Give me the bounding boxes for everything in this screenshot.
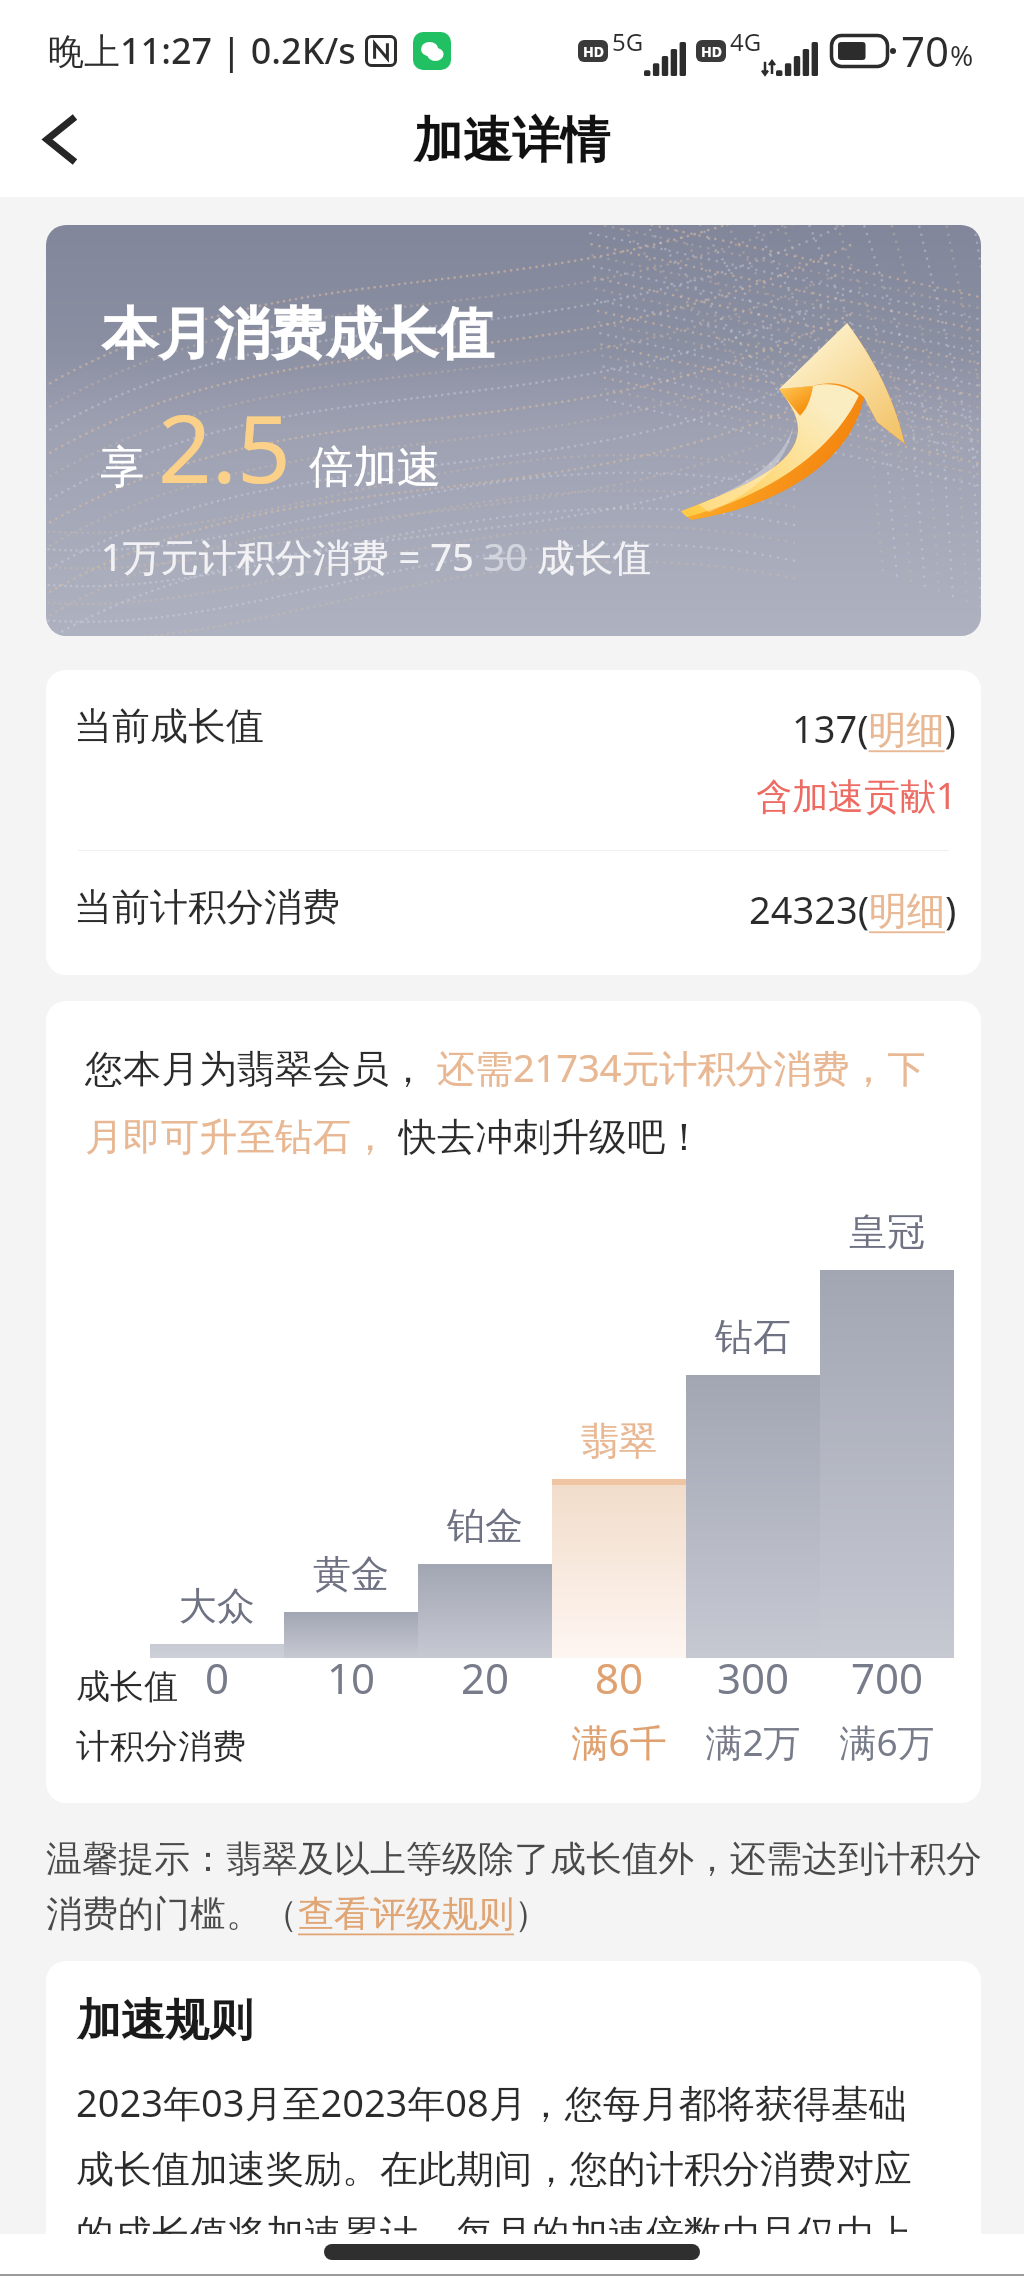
staticText: 满6千 <box>552 1716 686 1767</box>
staticText: HD <box>701 42 722 61</box>
staticText: 24323(明细) <box>749 883 957 935</box>
staticText: 2.5 <box>158 383 291 511</box>
staticText: 皇冠 <box>842 1208 932 1256</box>
staticText: HD <box>583 42 604 61</box>
staticText: 当前计积分消费 <box>74 883 340 931</box>
staticText: 加速规则 <box>77 1993 253 2048</box>
staticText: 成长值 <box>76 1665 178 1708</box>
staticText: 加速详情 <box>414 110 610 172</box>
staticText: 含加速贡献1 <box>756 771 957 820</box>
staticText: 享 <box>100 440 144 495</box>
staticText: 5G <box>612 25 644 58</box>
staticText: 700 <box>820 1649 954 1706</box>
staticText: % <box>950 36 974 74</box>
staticText: 137(明细) <box>792 702 957 754</box>
staticText: 10 <box>284 1649 418 1706</box>
staticText: 翡翠 <box>574 1417 664 1465</box>
staticText: 80 <box>552 1649 686 1706</box>
staticText: 0 <box>150 1649 284 1706</box>
staticText: 4G <box>730 25 762 58</box>
staticText: 温馨提示：翡翠及以上等级除了成长值外，还需达到计积分消费的门槛。（查看评级规则） <box>46 1836 988 1937</box>
staticText: 满2万 <box>686 1716 820 1767</box>
staticText: 2023年03月至2023年08月，您每月都将获得基础成长值加速奖励。在此期间，… <box>76 2076 924 2276</box>
staticText: 大众 <box>172 1582 262 1630</box>
staticText: 晚上11:27 | 0.2K/s <box>48 26 356 75</box>
staticText: 当前成长值 <box>74 702 264 750</box>
staticText: 满6万 <box>820 1716 954 1767</box>
staticText: 铂金 <box>440 1502 530 1550</box>
staticText: 计积分消费 <box>76 1725 246 1768</box>
staticText: 您本月为翡翠会员， 还需21734元计积分消费，下月即可升至钻石， 快去冲刺升级… <box>85 1041 945 1161</box>
staticText: 本月消费成长值 <box>102 299 494 370</box>
button[interactable]: Back <box>25 103 97 175</box>
staticText: 70 <box>901 22 950 79</box>
button[interactable]: 当前计积分消费 <box>46 851 981 975</box>
staticText: 1万元计积分消费 = 75 30 成长值 <box>101 530 651 582</box>
staticText: 钻石 <box>708 1313 798 1361</box>
staticText: 黄金 <box>306 1550 396 1598</box>
button[interactable]: 当前成长值 <box>46 670 981 850</box>
staticText: 倍加速 <box>309 440 441 495</box>
staticText: 300 <box>686 1649 820 1706</box>
staticText: 20 <box>418 1649 552 1706</box>
